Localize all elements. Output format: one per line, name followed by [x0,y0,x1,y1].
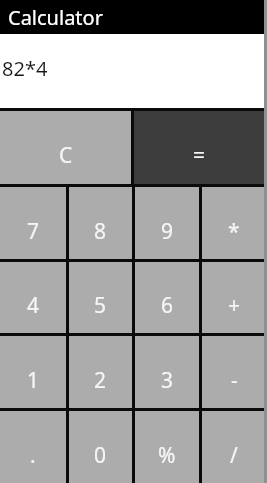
staticText: 0 [94,441,107,470]
button[interactable]: 8 [69,187,132,259]
button[interactable]: = [134,111,264,184]
staticText: . [30,441,36,470]
staticText: 82*4 [2,55,48,82]
staticText: / [230,441,238,470]
button[interactable]: C [0,111,131,184]
button[interactable]: 82*4 [0,34,267,108]
staticText: - [231,366,238,395]
button[interactable]: / [202,411,266,483]
staticText: 9 [161,217,174,246]
button[interactable]: % [135,411,199,483]
staticText: * [228,217,240,246]
button[interactable]: - [202,336,266,408]
staticText: C [59,141,73,170]
staticText: Calculator [8,4,103,31]
staticText: 4 [27,291,40,320]
button[interactable]: 4 [0,262,66,333]
staticText: 6 [161,291,174,320]
button[interactable]: + [202,262,266,333]
staticText: 8 [94,217,107,246]
staticText: = [193,141,206,170]
button[interactable]: 3 [135,336,199,408]
staticText: + [228,291,241,320]
staticText: % [158,441,176,470]
staticText: 7 [27,217,40,246]
button[interactable]: * [202,187,266,259]
staticText: 5 [94,291,107,320]
button[interactable]: 2 [69,336,132,408]
button[interactable]: 7 [0,187,66,259]
button[interactable]: 6 [135,262,199,333]
button[interactable]: 5 [69,262,132,333]
button[interactable]: 0 [69,411,132,483]
staticText: 2 [94,366,107,395]
button[interactable]: 1 [0,336,66,408]
staticText: 1 [27,366,40,395]
button[interactable]: 9 [135,187,199,259]
staticText: 3 [161,366,174,395]
